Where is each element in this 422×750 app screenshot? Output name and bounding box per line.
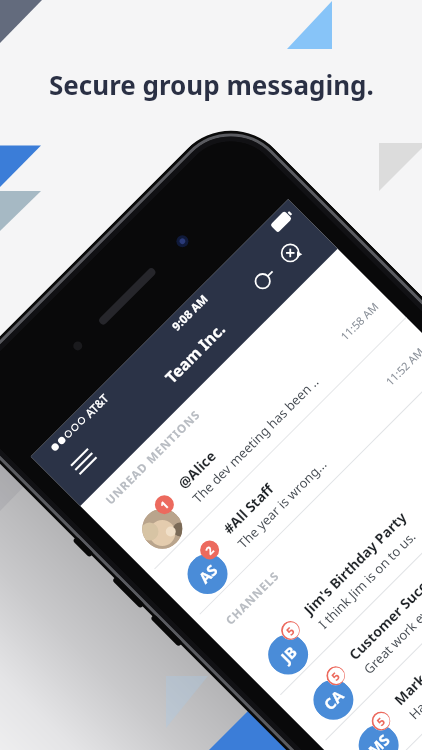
staticText: 5 [282, 623, 298, 638]
button[interactable]: Search [245, 261, 285, 300]
staticText: Have you seen the n... [405, 615, 422, 723]
button[interactable]: AS [149, 318, 422, 621]
button[interactable]: Menu [60, 437, 109, 485]
staticText: CA [319, 685, 348, 714]
staticText: AT&T [82, 390, 113, 421]
staticText: I think Jim is on to us. [314, 527, 420, 633]
staticText: @Alice [174, 446, 220, 493]
staticText: Team Inc. [160, 318, 230, 388]
button[interactable]: CA [275, 444, 422, 746]
staticText: The year is wrong... [234, 455, 331, 552]
staticText: 11:52 AM [382, 344, 422, 389]
button[interactable]: JB [230, 399, 422, 701]
staticText: The dev meeting has been .. [188, 372, 323, 507]
button[interactable]: New message [271, 233, 311, 273]
staticText: 5 [328, 668, 343, 684]
staticText: AS [194, 560, 222, 587]
staticText: 2 [202, 542, 217, 558]
staticText: Secure group messaging. [49, 67, 374, 102]
button[interactable]: 1 [104, 273, 407, 575]
staticText: Great work everyone! [360, 572, 422, 678]
staticText: 5 [373, 713, 389, 729]
staticText: #All Staff [219, 479, 277, 538]
staticText: 11:58 AM [337, 299, 381, 343]
staticText: 1 [157, 497, 172, 512]
button[interactable]: MS [321, 489, 422, 750]
staticText: Jim's Birthday Party [299, 507, 410, 618]
staticText: Marketing [390, 643, 422, 709]
staticText: JB [276, 642, 301, 666]
staticText: CHANNELS [222, 568, 283, 628]
staticText: 9:08 AM [169, 291, 212, 334]
staticText: MS [364, 729, 394, 750]
staticText: UNREAD MENTIONS [102, 406, 204, 508]
staticText: Customer Success [345, 561, 422, 664]
